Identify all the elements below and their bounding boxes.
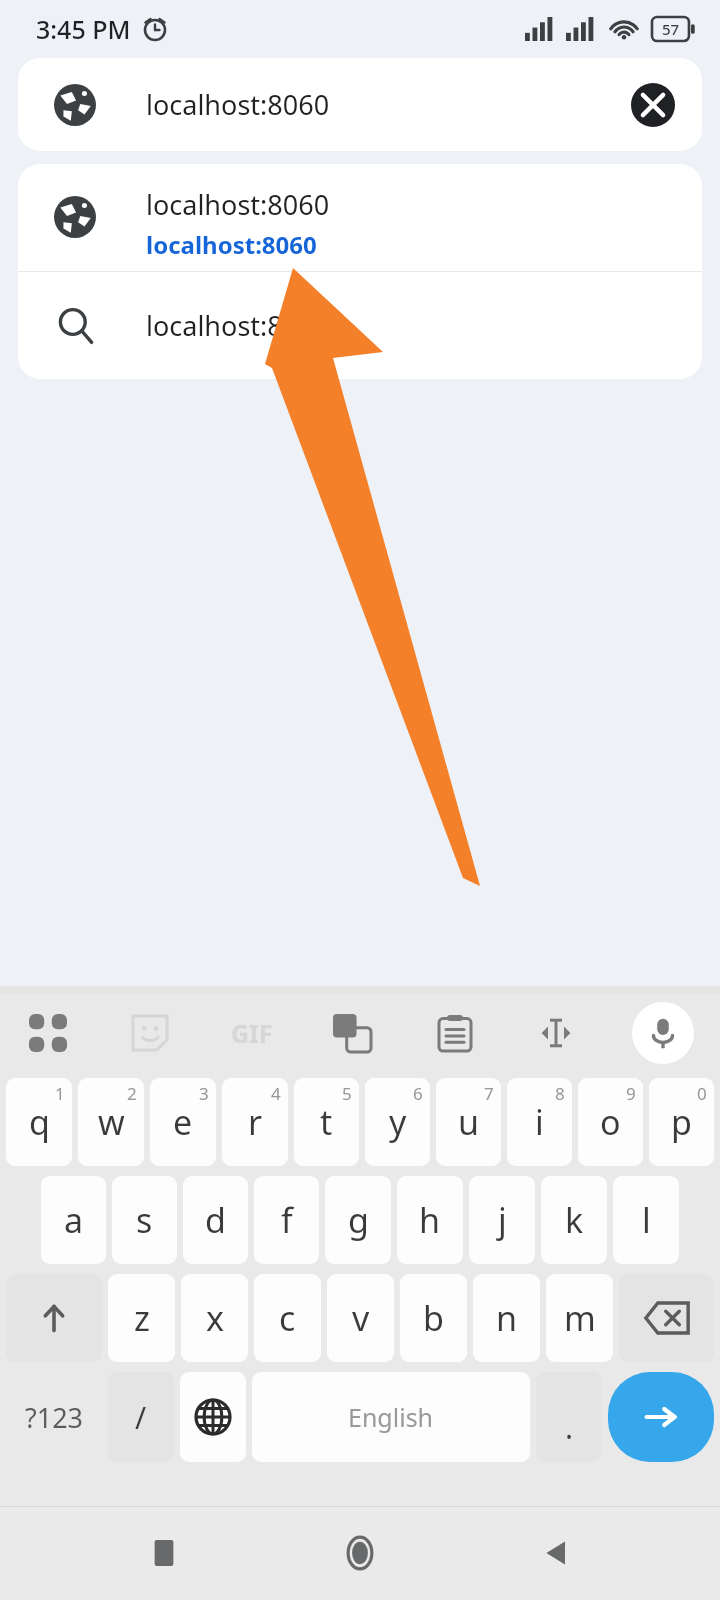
button[interactable]: t xyxy=(294,1078,359,1166)
staticText: 2 xyxy=(127,1082,137,1105)
staticText: l xyxy=(642,1197,651,1243)
button[interactable]: l xyxy=(613,1176,679,1264)
staticText: e xyxy=(173,1099,193,1145)
button[interactable]: i xyxy=(507,1078,572,1166)
button[interactable]: . xyxy=(536,1372,602,1462)
staticText: 57 xyxy=(662,19,680,39)
button[interactable]: Go xyxy=(608,1372,714,1462)
button[interactable]: b xyxy=(400,1274,467,1362)
button[interactable]: d xyxy=(183,1176,248,1264)
staticText: n xyxy=(496,1295,518,1341)
staticText: p xyxy=(671,1099,692,1145)
staticText: q xyxy=(29,1099,50,1145)
staticText: 7 xyxy=(484,1082,494,1105)
staticText: 0 xyxy=(697,1082,707,1105)
button[interactable]: English xyxy=(252,1372,530,1462)
button[interactable]: Home xyxy=(328,1521,392,1585)
button[interactable]: s xyxy=(112,1176,177,1264)
staticText: y xyxy=(389,1099,407,1145)
button[interactable]: Apps xyxy=(20,1005,76,1061)
button[interactable]: y xyxy=(365,1078,430,1166)
button[interactable]: Backspace xyxy=(619,1274,714,1362)
staticText: 3 xyxy=(199,1082,209,1105)
button[interactable]: m xyxy=(546,1274,613,1362)
staticText: h xyxy=(419,1197,441,1243)
button[interactable]: Change language xyxy=(180,1372,246,1462)
button[interactable]: GIF xyxy=(222,1003,282,1063)
button[interactable]: f xyxy=(254,1176,319,1264)
button[interactable]: e xyxy=(150,1078,216,1166)
staticText: o xyxy=(600,1099,621,1145)
button[interactable]: Clipboard xyxy=(427,1005,483,1061)
staticText: z xyxy=(134,1295,150,1341)
staticText: / xyxy=(135,1397,147,1438)
button[interactable]: Stickers xyxy=(122,1005,178,1061)
button[interactable]: n xyxy=(473,1274,540,1362)
staticText: v xyxy=(352,1295,370,1341)
staticText: 9 xyxy=(626,1082,636,1105)
staticText: a xyxy=(64,1197,84,1243)
button[interactable]: Voice input xyxy=(632,1002,694,1064)
button[interactable]: x xyxy=(181,1274,248,1362)
staticText: x xyxy=(206,1295,224,1341)
button[interactable]: p xyxy=(649,1078,714,1166)
button[interactable]: k xyxy=(541,1176,607,1264)
staticText: localhost:8060 xyxy=(146,228,317,261)
staticText: localhost:8 xyxy=(146,307,283,344)
staticText: 3:45 PM xyxy=(36,12,131,46)
staticText: localhost:8060 xyxy=(146,86,330,123)
button[interactable]: g xyxy=(325,1176,391,1264)
staticText: u xyxy=(458,1099,480,1145)
staticText: f xyxy=(281,1197,293,1243)
staticText: GIF xyxy=(231,1016,273,1050)
button[interactable]: localhost:8060 xyxy=(18,58,702,151)
staticText: ?123 xyxy=(25,1399,84,1436)
staticText: localhost:8060 xyxy=(146,186,330,223)
button[interactable]: Shift xyxy=(6,1274,102,1362)
staticText: 4 xyxy=(271,1082,281,1105)
button[interactable]: v xyxy=(327,1274,394,1362)
button[interactable]: / xyxy=(108,1372,174,1462)
staticText: w xyxy=(98,1099,125,1145)
button[interactable]: h xyxy=(397,1176,463,1264)
button[interactable]: o xyxy=(578,1078,643,1166)
staticText: c xyxy=(279,1295,296,1341)
button[interactable]: u xyxy=(436,1078,501,1166)
staticText: t xyxy=(320,1099,333,1145)
staticText: b xyxy=(423,1295,444,1341)
staticText: j xyxy=(498,1197,507,1243)
staticText: d xyxy=(205,1197,226,1243)
staticText: 1 xyxy=(55,1082,65,1105)
button[interactable]: Recent apps xyxy=(132,1521,196,1585)
button[interactable]: a xyxy=(41,1176,106,1264)
staticText: 5 xyxy=(342,1082,352,1105)
staticText: English xyxy=(348,1400,434,1434)
button[interactable]: j xyxy=(469,1176,535,1264)
button[interactable]: z xyxy=(108,1274,175,1362)
button[interactable]: Back xyxy=(524,1521,588,1585)
staticText: g xyxy=(348,1197,369,1243)
button[interactable]: Translate xyxy=(324,1005,380,1061)
staticText: r xyxy=(248,1099,263,1145)
button[interactable]: c xyxy=(254,1274,321,1362)
button[interactable]: Text editing xyxy=(528,1005,584,1061)
staticText: 6 xyxy=(413,1082,423,1105)
button[interactable]: q xyxy=(6,1078,72,1166)
staticText: . xyxy=(565,1407,574,1448)
button[interactable]: r xyxy=(222,1078,288,1166)
staticText: s xyxy=(136,1197,153,1243)
button[interactable]: w xyxy=(78,1078,144,1166)
button[interactable]: Clear xyxy=(630,82,676,128)
staticText: 8 xyxy=(555,1082,565,1105)
button[interactable]: ?123 xyxy=(6,1372,102,1462)
staticText: i xyxy=(535,1099,544,1145)
button[interactable]: localhost:8 xyxy=(18,272,702,379)
staticText: k xyxy=(565,1197,584,1243)
button[interactable]: localhost:8060 xyxy=(18,164,702,271)
staticText: m xyxy=(564,1295,596,1341)
